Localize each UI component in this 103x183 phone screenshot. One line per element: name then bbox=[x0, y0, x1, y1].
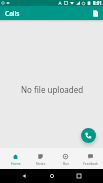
staticText: Home bbox=[11, 161, 21, 166]
button[interactable]: Feedback bbox=[78, 148, 103, 169]
staticText: No file uploaded bbox=[21, 84, 84, 95]
button[interactable]: Recent apps bbox=[74, 171, 84, 181]
staticText: Bus bbox=[63, 161, 69, 166]
staticText: Notes bbox=[36, 161, 46, 166]
button[interactable]: Home bbox=[3, 148, 28, 169]
button[interactable]: Notes bbox=[28, 148, 53, 169]
staticText: Calls bbox=[5, 9, 20, 18]
button[interactable]: Bus bbox=[53, 148, 78, 169]
button[interactable]: Home bbox=[47, 171, 57, 181]
staticText: Feedback bbox=[83, 161, 99, 166]
button[interactable]: Back bbox=[19, 171, 29, 181]
staticText: 8:01 bbox=[93, 0, 102, 6]
button[interactable]: Call bbox=[81, 128, 96, 143]
button[interactable]: Document bbox=[89, 7, 101, 19]
